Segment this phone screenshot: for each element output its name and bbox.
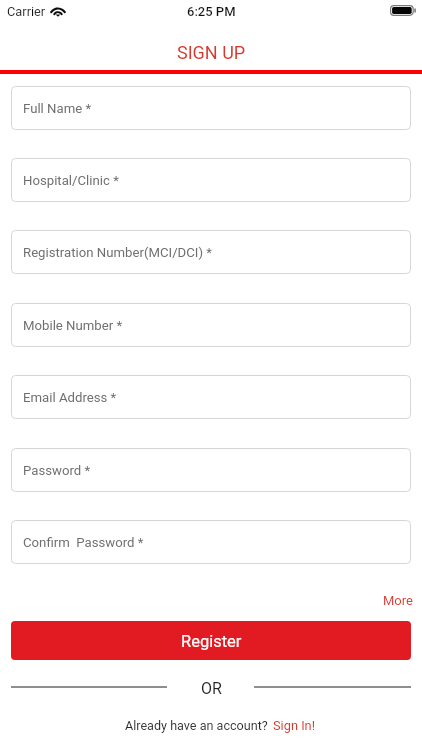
staticText: More: [383, 593, 413, 608]
staticText: Confirm Password *: [23, 535, 144, 550]
staticText: Password *: [23, 463, 91, 478]
staticText: Register: [181, 632, 242, 651]
staticText: Full Name *: [23, 101, 92, 116]
other: Wifi signal: [50, 1, 66, 17]
button[interactable]: Full Name *: [11, 86, 411, 130]
button[interactable]: Email Address *: [11, 375, 411, 419]
staticText: OR: [201, 679, 222, 698]
other: Battery full: [390, 5, 416, 16]
staticText: Already have an account?: [125, 718, 268, 733]
button[interactable]: Mobile Number *: [11, 303, 411, 347]
staticText: Hospital/Clinic *: [23, 173, 119, 188]
button[interactable]: Sign In!: [273, 718, 315, 733]
button[interactable]: Register: [11, 621, 411, 660]
staticText: Registration Number(MCI/DCI) *: [23, 245, 212, 260]
button[interactable]: More: [383, 593, 413, 608]
staticText: SIGN UP: [177, 42, 246, 63]
staticText: Carrier: [7, 4, 46, 19]
staticText: 6:25 PM: [187, 4, 236, 19]
staticText: Sign In!: [273, 718, 315, 733]
button[interactable]: Hospital/Clinic *: [11, 158, 411, 202]
button[interactable]: Registration Number(MCI/DCI) *: [11, 230, 411, 274]
button[interactable]: Confirm Password *: [11, 520, 411, 564]
staticText: Email Address *: [23, 390, 117, 405]
button[interactable]: Password *: [11, 448, 411, 492]
staticText: Mobile Number *: [23, 318, 123, 333]
